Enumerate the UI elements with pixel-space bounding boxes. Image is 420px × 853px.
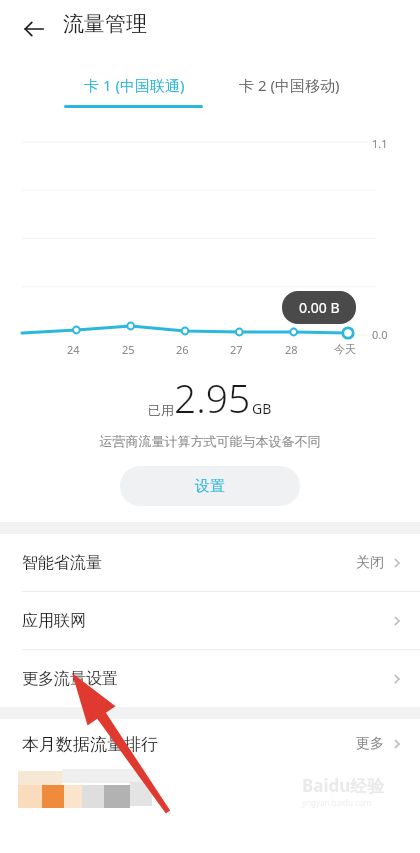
button[interactable]: 更多流量设置 [0, 650, 420, 707]
staticText: 关闭 [356, 554, 384, 572]
staticText: 更多 [356, 735, 384, 753]
button[interactable]: 应用联网 [0, 592, 420, 649]
staticText: Baidu经验 [302, 774, 385, 797]
staticText: 1.1 [372, 136, 388, 151]
button[interactable]: 设置 [120, 466, 300, 506]
button[interactable]: Back [14, 9, 54, 49]
staticText: 已用 [148, 402, 174, 418]
staticText: 更多流量设置 [22, 669, 118, 689]
staticText: 24 [67, 342, 80, 357]
staticText: 卡 1 (中国联通) [84, 75, 185, 95]
staticText: 25 [122, 342, 135, 357]
staticText: 应用联网 [22, 611, 86, 631]
staticText: 卡 2 (中国移动) [239, 75, 340, 95]
staticText: 本月数据流量排行 [22, 734, 158, 755]
button[interactable]: 智能省流量 [0, 534, 420, 591]
staticText: jingyan.baidu.com [302, 797, 372, 808]
staticText: 智能省流量 [22, 553, 102, 573]
staticText: 设置 [195, 477, 225, 496]
staticText: 26 [176, 342, 189, 357]
button[interactable]: 本月数据流量排行 [0, 719, 420, 769]
button[interactable]: 卡 1 (中国联通) [58, 58, 210, 108]
button[interactable]: 卡 2 (中国移动) [213, 58, 365, 108]
staticText: 流量管理 [63, 11, 147, 37]
staticText: 2.95 [174, 371, 251, 424]
staticText: 0.0 [372, 327, 388, 342]
staticText: 0.00 B [299, 298, 340, 317]
staticText: 运营商流量计算方式可能与本设备不同 [0, 433, 420, 449]
staticText: 28 [285, 342, 298, 357]
staticText: GB [252, 399, 272, 418]
staticText: 27 [230, 342, 243, 357]
staticText: 今天 [334, 342, 356, 356]
